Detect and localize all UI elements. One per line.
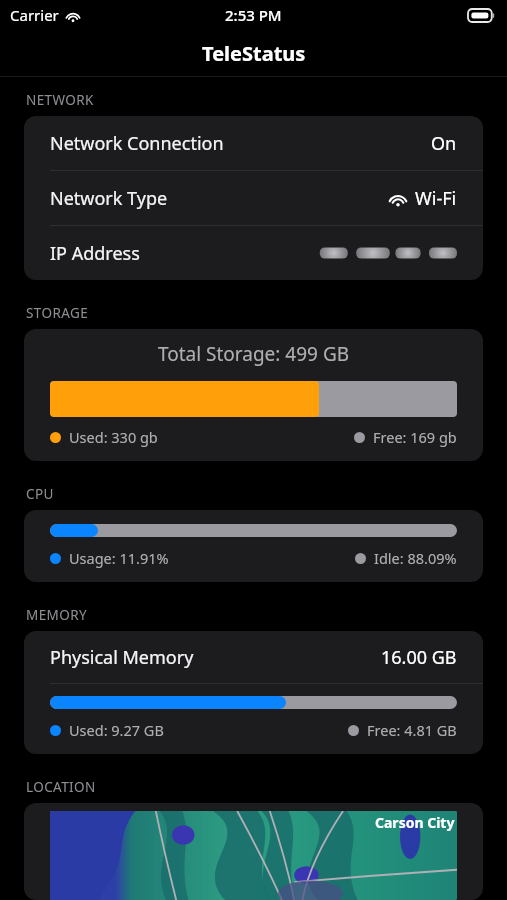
staticText: Used: 330 gb bbox=[69, 427, 158, 447]
staticText: Network Connection bbox=[50, 131, 224, 156]
staticText: 2:53 PM bbox=[225, 5, 282, 25]
button[interactable]: Network Type bbox=[24, 171, 483, 226]
staticText: Physical Memory bbox=[50, 645, 194, 670]
staticText: Free: 169 gb bbox=[373, 427, 457, 447]
staticText: Free: 4.81 GB bbox=[367, 720, 457, 740]
staticText: Carson City bbox=[375, 813, 455, 832]
staticText: IP Address bbox=[50, 241, 140, 266]
staticText: Wi-Fi bbox=[415, 186, 457, 211]
staticText: Total Storage: 499 GB bbox=[24, 341, 483, 367]
staticText: Network Type bbox=[50, 186, 168, 211]
staticText: TeleStatus bbox=[202, 40, 306, 67]
button[interactable]: Network Connection bbox=[24, 116, 483, 171]
staticText: CPU bbox=[26, 485, 54, 503]
staticText: MEMORY bbox=[26, 606, 87, 624]
staticText: Used: 9.27 GB bbox=[69, 720, 164, 740]
staticText: Carrier bbox=[10, 5, 59, 25]
staticText: On bbox=[431, 131, 457, 156]
staticText: Idle: 88.09% bbox=[374, 548, 457, 568]
button[interactable]: IP Address bbox=[24, 226, 483, 280]
staticText: NETWORK bbox=[26, 91, 94, 109]
button[interactable]: Physical Memory bbox=[50, 631, 457, 683]
staticText: Usage: 11.91% bbox=[69, 548, 169, 568]
button[interactable]: Map showing current location bbox=[24, 803, 483, 900]
staticText: LOCATION bbox=[26, 778, 96, 796]
staticText: STORAGE bbox=[26, 304, 89, 322]
staticText: 16.00 GB bbox=[381, 645, 457, 670]
